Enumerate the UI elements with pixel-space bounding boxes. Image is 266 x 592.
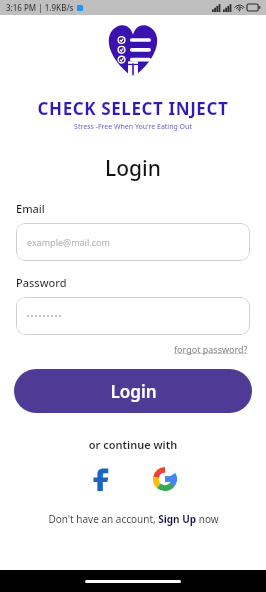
staticText: example@mail.com — [27, 236, 110, 248]
button[interactable]: Continue with Facebook — [84, 462, 118, 496]
staticText: 3:16 PM | 1.9KB/s — [6, 2, 74, 13]
button[interactable] — [16, 297, 250, 335]
staticText: Password — [16, 275, 67, 290]
staticText: Login — [110, 380, 157, 403]
button[interactable]: Don't have an account, Sign Up now — [0, 512, 266, 526]
staticText: forgot password? — [174, 343, 248, 355]
staticText: Stress -Free When You're Eating Out — [0, 122, 266, 132]
staticText: CHECK SELECT INJECT — [0, 97, 266, 120]
staticText: or continue with — [0, 437, 266, 452]
staticText: Login — [0, 154, 266, 183]
button[interactable]: forgot password? — [172, 341, 250, 357]
button[interactable]: example@mail.com — [16, 223, 250, 261]
staticText: Don't have an account, Sign Up now — [48, 512, 219, 526]
staticText: Email — [16, 201, 45, 216]
button[interactable]: Continue with Google — [148, 462, 182, 496]
button[interactable]: Login — [14, 369, 252, 413]
